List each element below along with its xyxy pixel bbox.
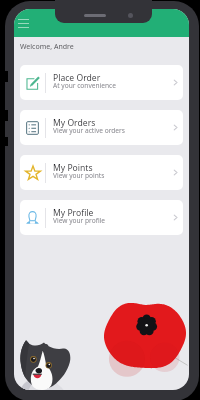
staticText: My Orders [53,117,96,129]
staticText: My Points [53,162,93,174]
staticText: View your active orders [53,126,125,135]
staticText: My Profile [53,207,94,219]
staticText: At your convenience [53,81,116,90]
staticText: View your points [53,171,105,180]
staticText: Place Order [53,72,101,84]
button[interactable]: Place Order [20,65,183,100]
button[interactable]: My Orders [20,110,183,145]
button[interactable]: My Points [20,155,183,190]
staticText: View your profile [53,216,106,225]
button[interactable]: My Profile [20,200,183,235]
button[interactable]: Open navigation menu [16,14,31,29]
staticText: Welcome, Andre [20,42,74,52]
